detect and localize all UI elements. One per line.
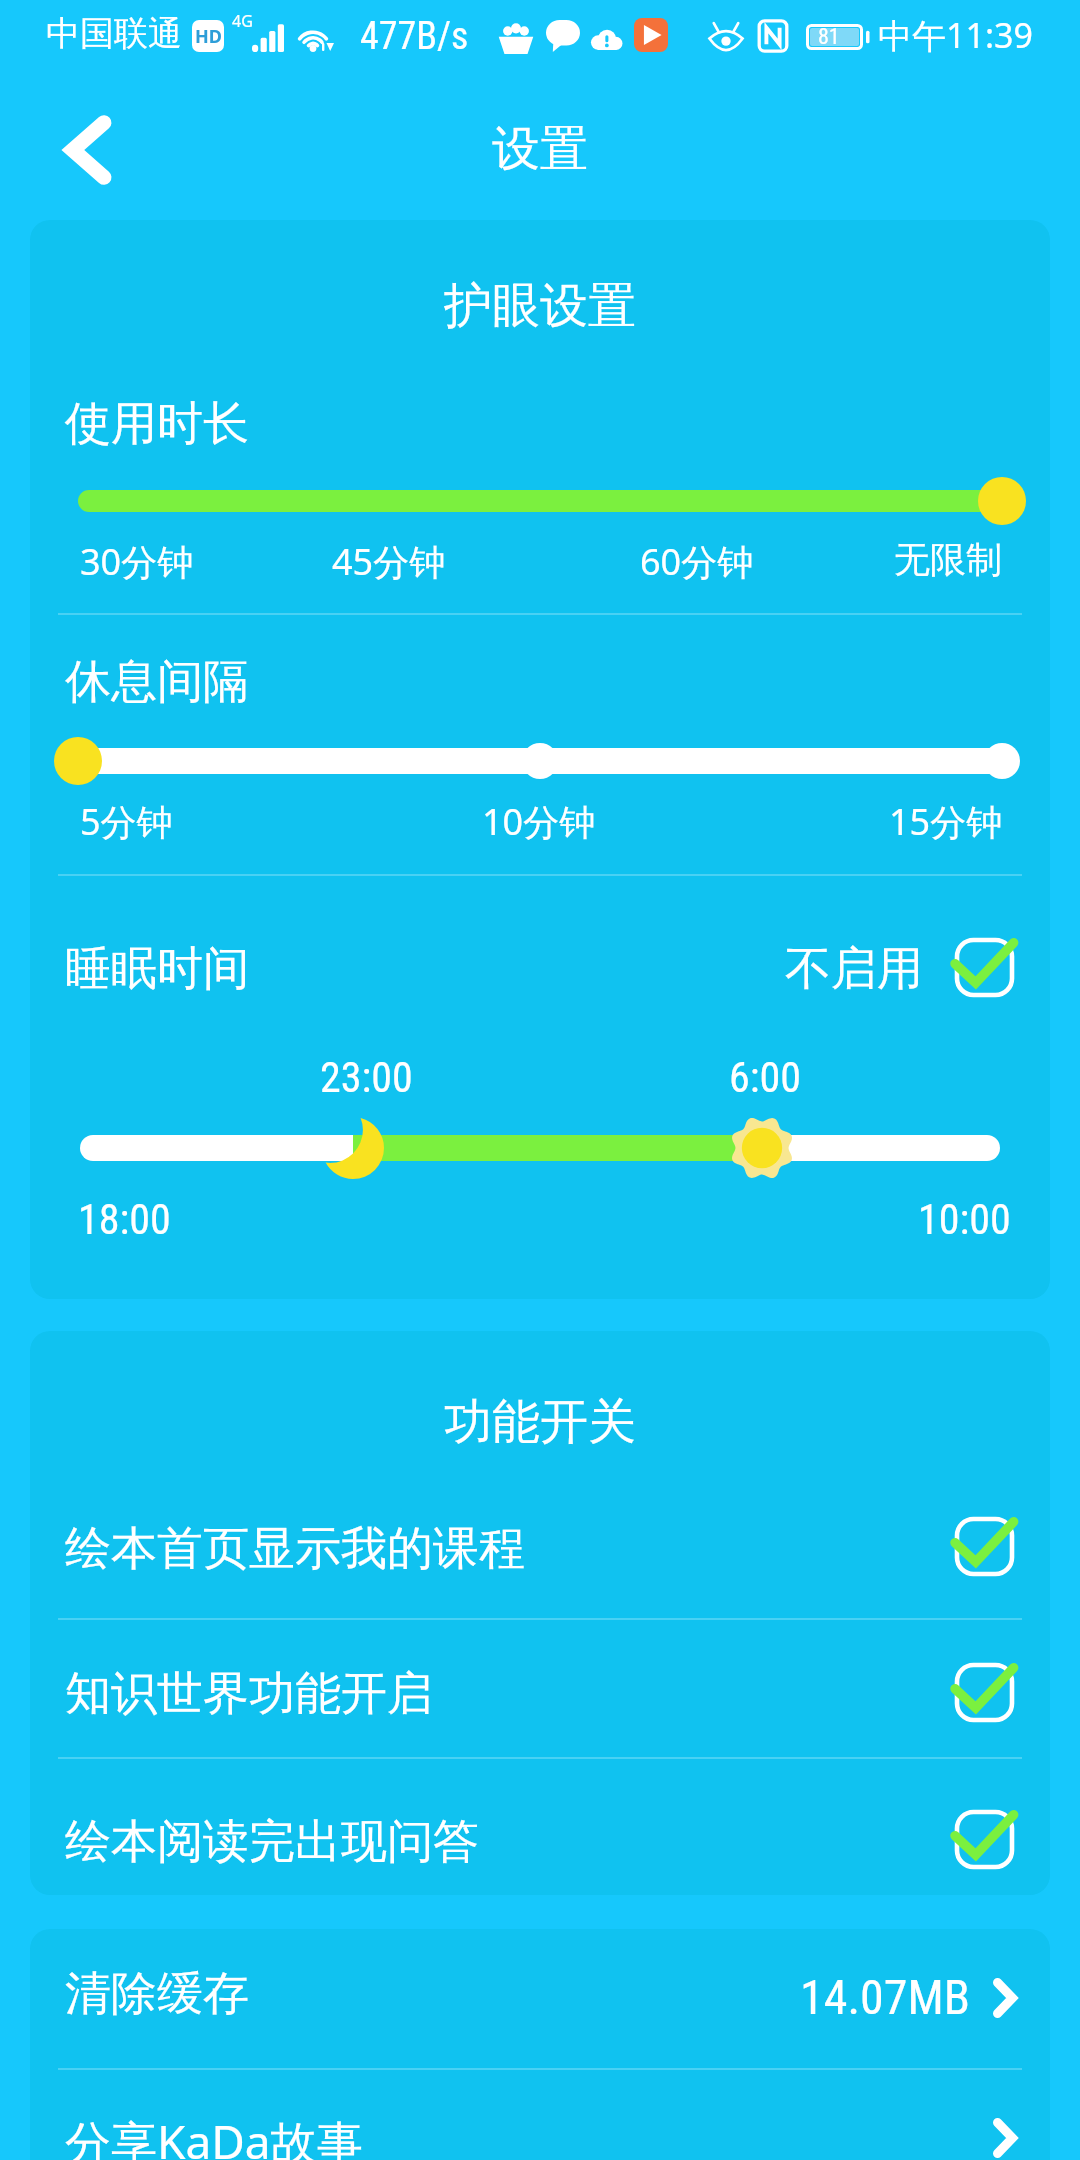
staticText: 休息间隔 <box>65 653 249 711</box>
staticText: 15分钟 <box>889 797 1003 846</box>
staticText: 18:00 <box>78 1195 171 1244</box>
staticText: 睡眠时间 <box>65 940 249 998</box>
staticText: 中国联通 <box>46 12 182 55</box>
button[interactable]: 绘本阅读完出现问答 <box>30 1749 1050 1889</box>
button[interactable]: Sleep time toggle <box>950 939 1020 1001</box>
staticText: 477B/s <box>360 14 469 59</box>
staticText: 设置 <box>492 119 588 179</box>
staticText: 6:00 <box>729 1053 802 1102</box>
staticText: 绘本首页显示我的课程 <box>65 1520 525 1578</box>
staticText: 60分钟 <box>640 537 754 586</box>
staticText: 10分钟 <box>482 797 596 846</box>
staticText: 护眼设置 <box>30 276 1050 336</box>
button[interactable]: 知识世界功能开启 <box>30 1601 1050 1741</box>
button[interactable]: 分享KaDa故事 <box>30 2069 1050 2160</box>
staticText: 30分钟 <box>80 537 194 586</box>
staticText: 4G <box>232 10 253 32</box>
staticText: 23:00 <box>320 1053 413 1102</box>
staticText: 14.07MB <box>800 1969 970 2025</box>
button[interactable]: 清除缓存 <box>30 1929 1050 2067</box>
staticText: 中午11:39 <box>878 12 1033 58</box>
staticText: 使用时长 <box>65 395 249 453</box>
staticText: 分享KaDa故事 <box>65 2110 363 2160</box>
staticText: 81 <box>818 24 840 50</box>
button[interactable]: 绘本首页显示我的课程 <box>30 1455 1050 1595</box>
staticText: 知识世界功能开启 <box>65 1665 433 1723</box>
button[interactable]: Back <box>30 88 146 212</box>
staticText: 5分钟 <box>80 797 173 846</box>
staticText: 10:00 <box>918 1195 1011 1244</box>
staticText: 无限制 <box>894 537 1002 582</box>
staticText: 45分钟 <box>332 537 446 586</box>
staticText: 绘本阅读完出现问答 <box>65 1813 479 1871</box>
staticText: HD <box>195 24 222 49</box>
staticText: 不启用 <box>785 940 923 998</box>
staticText: 功能开关 <box>30 1392 1050 1452</box>
staticText: 清除缓存 <box>65 1965 249 2023</box>
